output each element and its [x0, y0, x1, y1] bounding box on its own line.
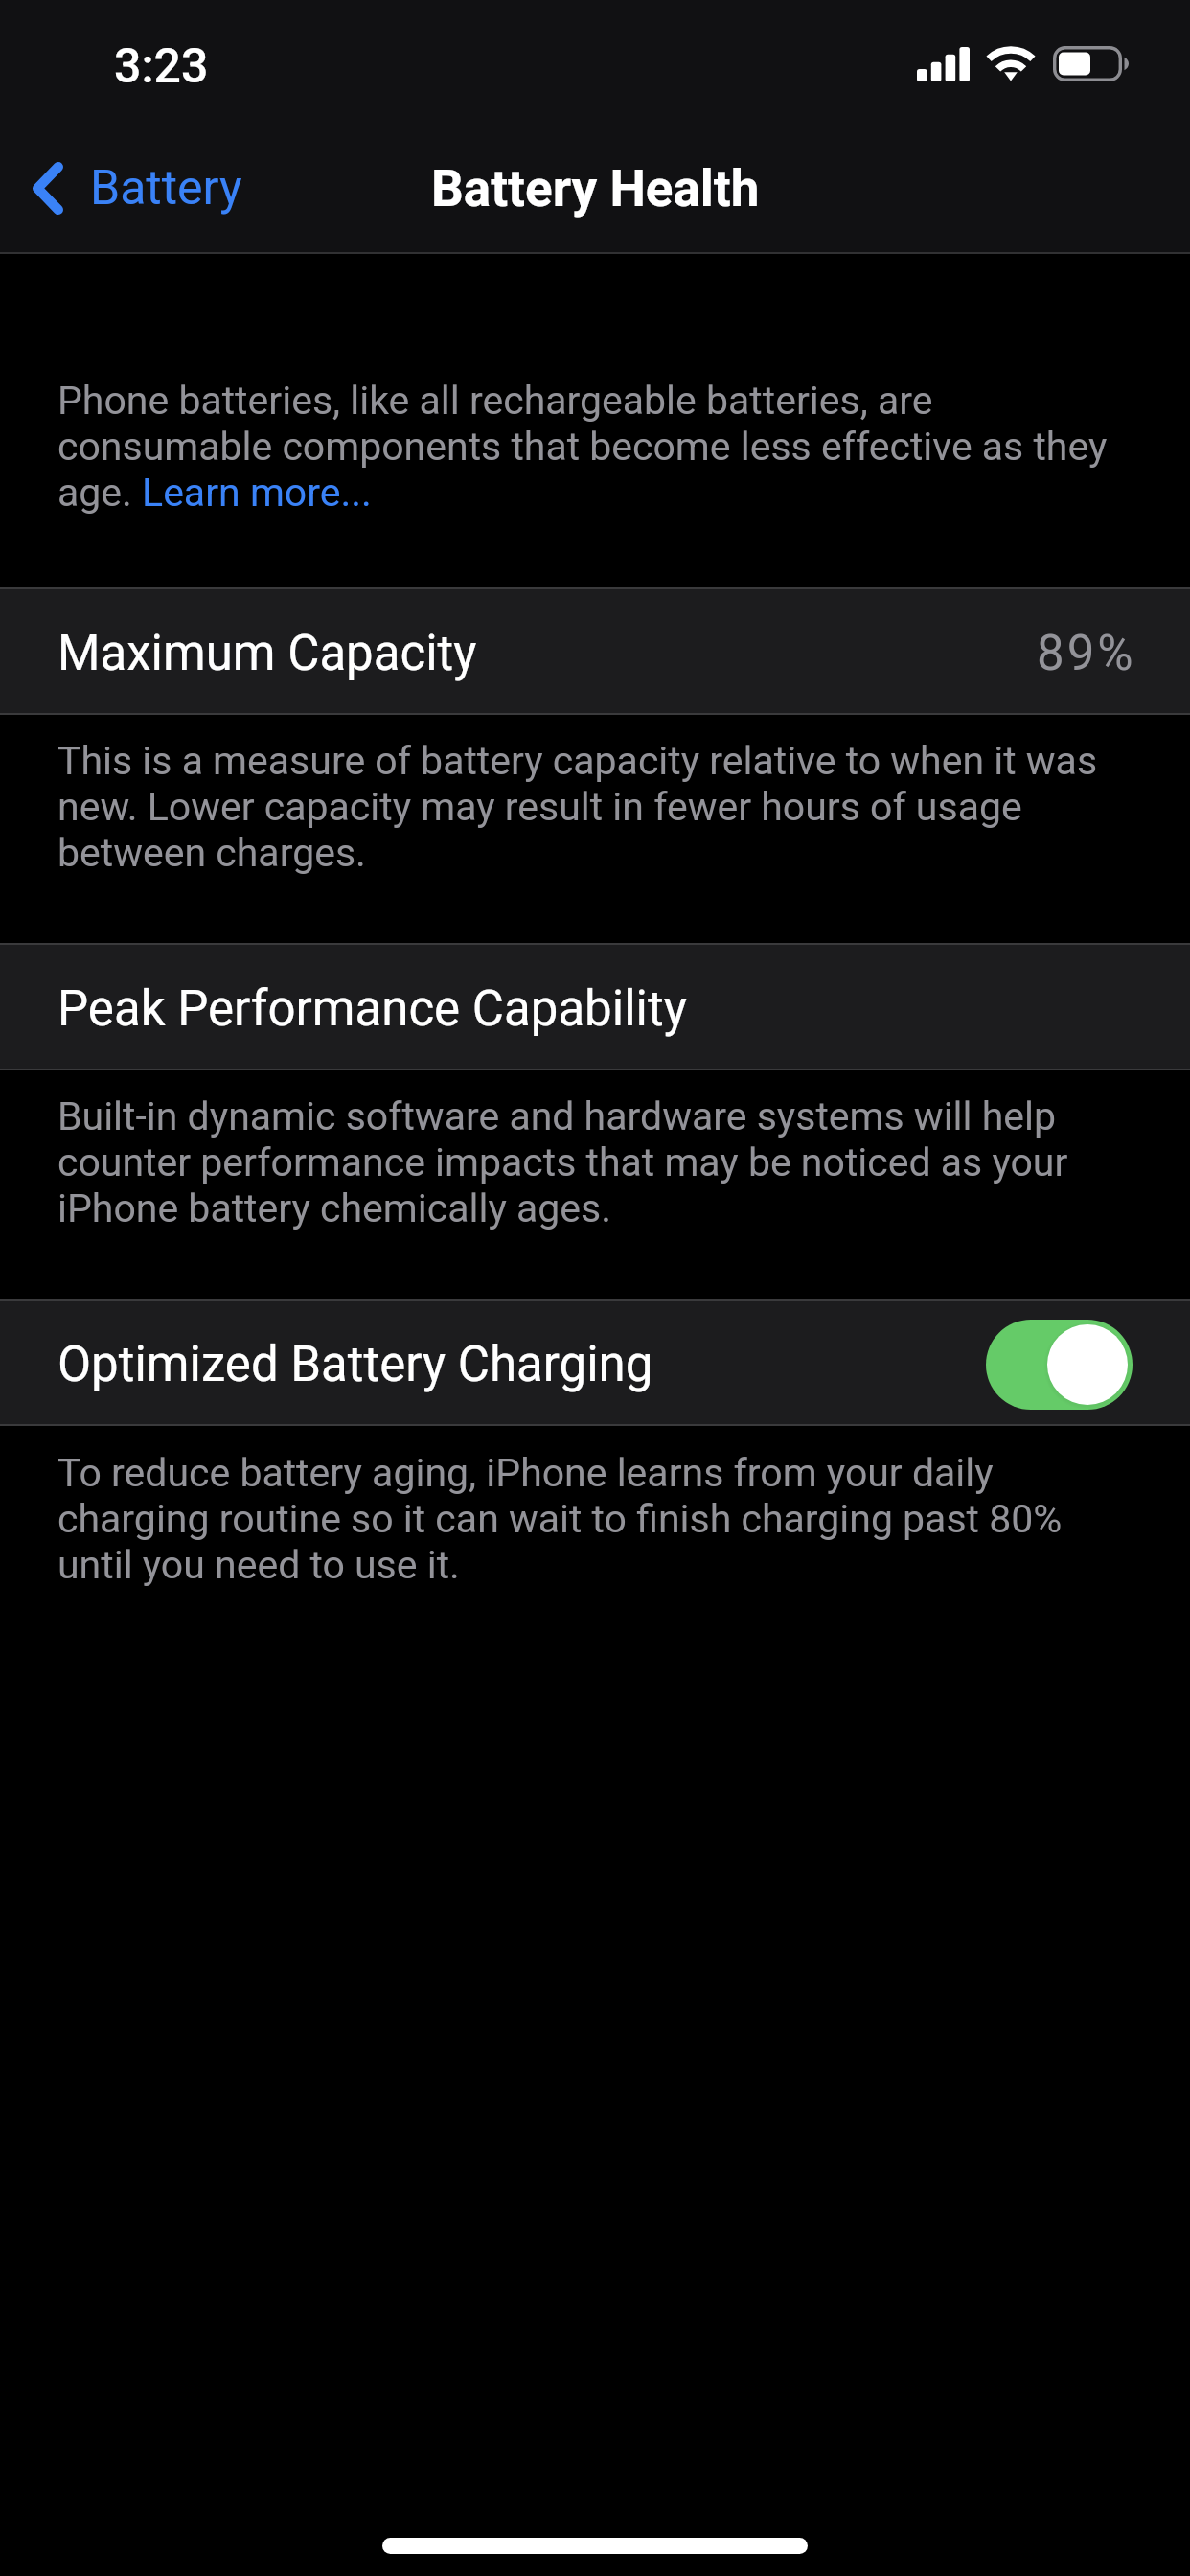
staticText: Battery	[90, 160, 242, 217]
staticText: Built-in dynamic software and hardware s…	[57, 1093, 1133, 1231]
button[interactable]: Maximum Capacity	[0, 588, 1190, 714]
button[interactable]: Optimized Battery Charging	[0, 1300, 1190, 1425]
staticText: This is a measure of battery capacity re…	[57, 738, 1133, 876]
staticText: 3:23	[114, 38, 209, 95]
staticText: Optimized Battery Charging	[57, 1336, 653, 1393]
staticText: Battery Health	[431, 159, 760, 218]
staticText: To reduce battery aging, iPhone learns f…	[57, 1450, 1133, 1588]
staticText: Maximum Capacity	[57, 625, 477, 682]
button[interactable]: Peak Performance Capability	[0, 944, 1190, 1069]
staticText: 89%	[1037, 625, 1136, 682]
button[interactable]: Phone batteries, like all rechargeable b…	[57, 378, 1133, 516]
button[interactable]: Optimized Battery Charging toggle	[986, 1320, 1133, 1410]
staticText: Phone batteries, like all rechargeable b…	[57, 378, 1133, 516]
staticText: Peak Performance Capability	[57, 980, 687, 1038]
button[interactable]: Back to Battery	[0, 145, 262, 232]
